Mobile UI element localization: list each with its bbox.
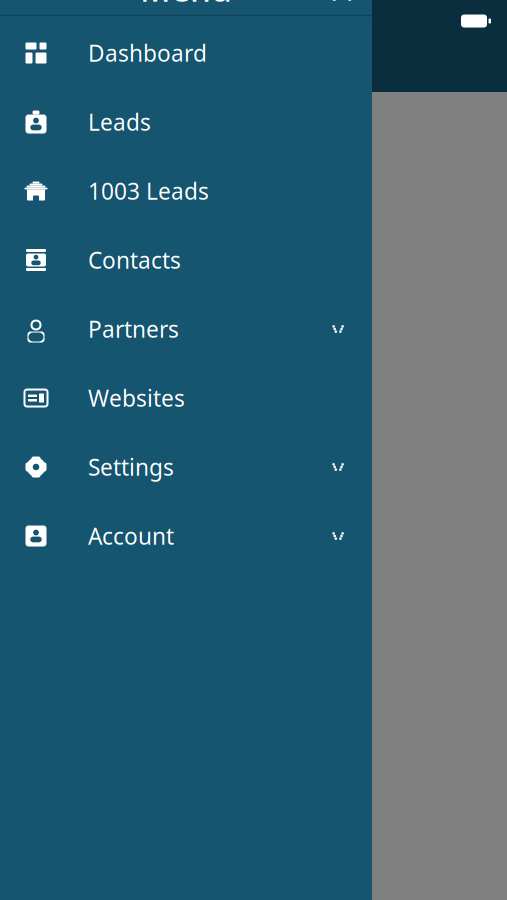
button[interactable]: Websites bbox=[0, 363, 372, 432]
button[interactable]: Account bbox=[0, 501, 372, 570]
staticText: Leads bbox=[88, 107, 151, 137]
staticText: Contacts bbox=[88, 245, 181, 275]
button[interactable]: 1003 Leads bbox=[0, 156, 372, 225]
button[interactable]: Leads bbox=[0, 87, 372, 156]
button[interactable]: Settings bbox=[0, 432, 372, 501]
staticText: Dashboard bbox=[88, 38, 207, 68]
staticText: Websites bbox=[88, 383, 185, 413]
button[interactable]: Contacts bbox=[0, 225, 372, 294]
button[interactable]: Dashboard bbox=[0, 18, 372, 87]
button[interactable]: Partners bbox=[0, 294, 372, 363]
staticText: Settings bbox=[88, 452, 174, 482]
staticText: Partners bbox=[88, 314, 179, 344]
staticText: Menu bbox=[140, 0, 232, 11]
staticText: Account bbox=[88, 521, 174, 551]
staticText: Carrier bbox=[14, 8, 78, 34]
button[interactable]: Close menu bbox=[320, 0, 364, 11]
staticText: 1003 Leads bbox=[88, 176, 209, 206]
staticText: View All bbox=[168, 466, 240, 493]
staticText: 11:35 AM bbox=[238, 8, 325, 34]
staticText: Good Morning! bbox=[24, 152, 187, 182]
